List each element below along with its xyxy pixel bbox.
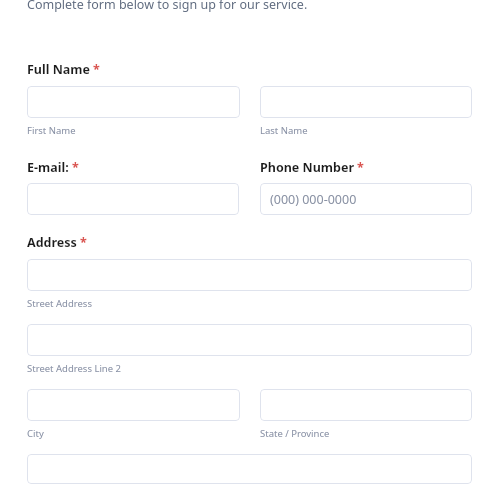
staticText: First Name	[27, 124, 76, 137]
staticText: State / Province	[260, 427, 330, 440]
staticText: *	[93, 61, 100, 78]
staticText: *	[72, 159, 79, 176]
staticText: E-mail:	[27, 159, 69, 176]
button[interactable]: City	[27, 389, 240, 421]
button[interactable]: Street Address Line 2	[27, 324, 472, 356]
staticText: Street Address Line 2	[27, 362, 121, 375]
button[interactable]: Postal / Zip Code	[27, 454, 472, 484]
staticText: Street Address	[27, 297, 92, 310]
staticText: City	[27, 427, 44, 440]
button[interactable]: Street Address	[27, 259, 472, 291]
staticText: Complete form below to sign up for our s…	[27, 0, 308, 13]
button[interactable]: Last Name	[260, 86, 472, 118]
staticText: *	[357, 159, 364, 176]
staticText: (000) 000-0000	[270, 191, 357, 208]
staticText: Last Name	[260, 124, 308, 137]
staticText: Full Name	[27, 61, 90, 78]
button[interactable]: Phone Number	[260, 183, 472, 215]
button[interactable]: E-mail	[27, 183, 239, 215]
button[interactable]: First Name	[27, 86, 240, 118]
staticText: Address	[27, 234, 77, 251]
staticText: *	[80, 234, 87, 251]
staticText: Phone Number	[260, 159, 354, 176]
button[interactable]: State / Province	[260, 389, 472, 421]
